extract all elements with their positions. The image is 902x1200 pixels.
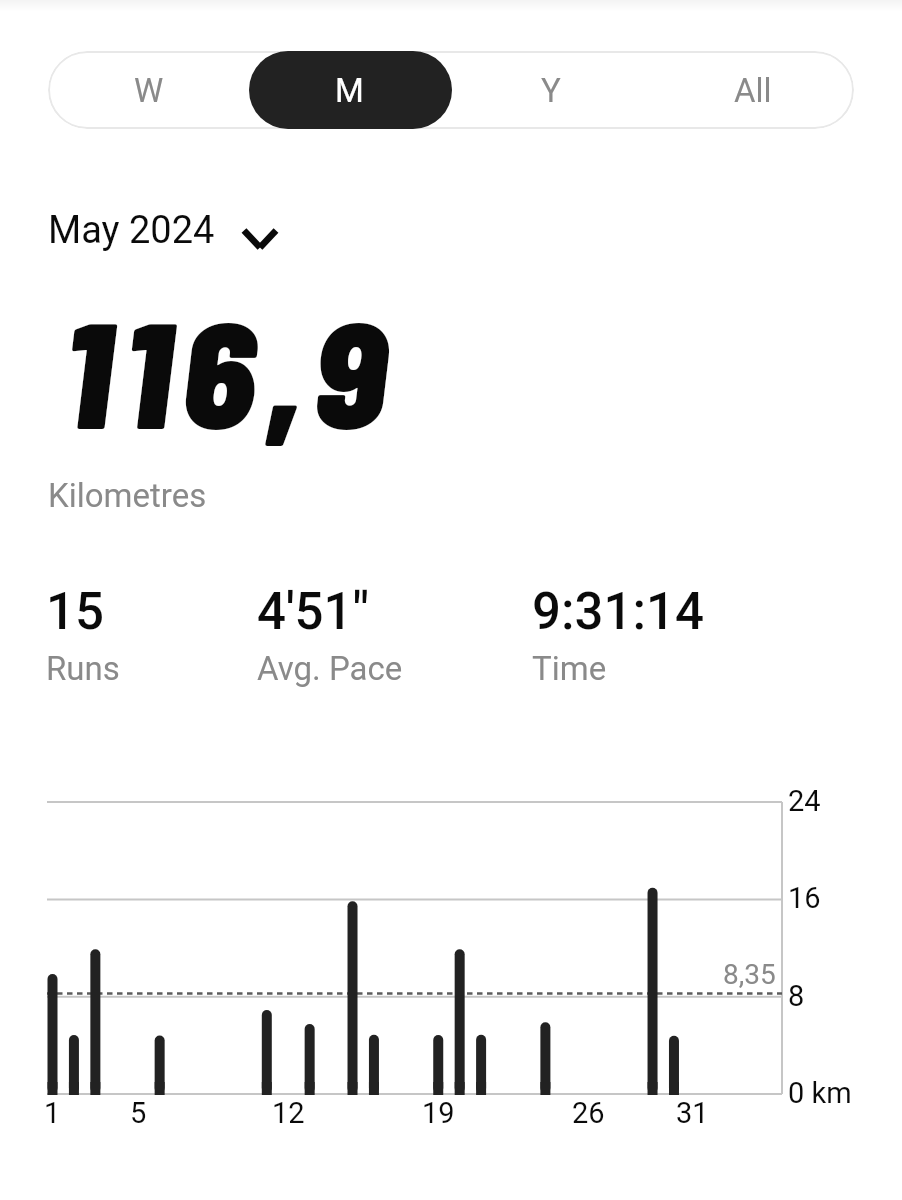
staticText: W xyxy=(134,71,164,110)
staticText: 9:31:14 xyxy=(532,582,704,642)
button[interactable]: 15 xyxy=(46,582,120,688)
staticText: 0 km xyxy=(788,1076,852,1110)
button[interactable]: May 2024 xyxy=(48,208,280,253)
staticText: 19 xyxy=(422,1096,455,1130)
staticText: 16 xyxy=(788,881,821,915)
staticText: 8,35 xyxy=(723,958,776,991)
staticText: 1 xyxy=(44,1096,61,1130)
staticText: 5 xyxy=(130,1096,147,1130)
staticText: Time xyxy=(532,649,607,688)
staticText: 31 xyxy=(676,1096,709,1130)
button[interactable]: Y xyxy=(450,51,652,129)
button[interactable]: All xyxy=(652,51,854,129)
staticText: 116,9 xyxy=(63,279,398,459)
staticText: All xyxy=(734,71,772,110)
other: Change month xyxy=(240,219,280,259)
button[interactable]: W xyxy=(48,51,249,129)
staticText: 26 xyxy=(572,1096,605,1130)
staticText: 15 xyxy=(46,582,104,642)
button[interactable]: 9:31:14 xyxy=(532,582,704,688)
staticText: Kilometres xyxy=(48,476,207,515)
staticText: Avg. Pace xyxy=(257,649,403,688)
button[interactable]: 4'51" xyxy=(257,582,403,688)
staticText: Runs xyxy=(46,649,120,688)
staticText: May 2024 xyxy=(48,208,215,253)
staticText: 24 xyxy=(788,784,821,818)
staticText: Y xyxy=(541,71,561,110)
staticText: 8 xyxy=(788,979,805,1013)
staticText: 4'51" xyxy=(257,582,370,642)
staticText: M xyxy=(335,71,364,110)
staticText: 12 xyxy=(272,1096,305,1130)
button[interactable]: M xyxy=(249,51,450,129)
